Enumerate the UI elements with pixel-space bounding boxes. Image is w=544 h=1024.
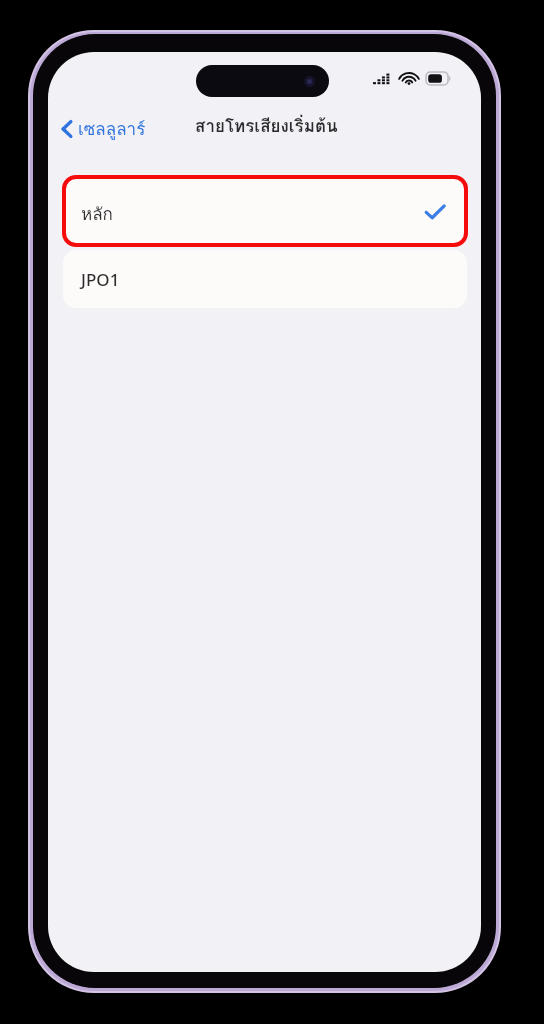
other: Selected	[425, 204, 445, 220]
button[interactable]: เซลลูลาร์	[57, 112, 150, 145]
staticText: JPO1	[81, 268, 120, 291]
staticText: เซลลูลาร์	[78, 115, 146, 142]
button[interactable]: JPO1	[63, 250, 467, 308]
staticText: สายโทรเสียงเริ่มต้น	[195, 112, 338, 138]
button[interactable]: หลัก	[63, 178, 467, 244]
staticText: หลัก	[81, 200, 113, 227]
